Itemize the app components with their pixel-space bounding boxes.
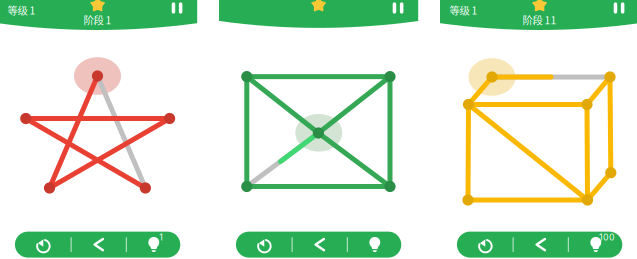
staticText: 阶段 11	[523, 12, 557, 27]
staticText: 等级 1	[450, 2, 478, 18]
button[interactable]: Back	[294, 232, 346, 258]
button[interactable]: Undo	[459, 232, 511, 258]
staticText: 100	[599, 232, 615, 243]
button[interactable]: Undo	[17, 232, 69, 258]
button[interactable]: Back	[515, 232, 567, 258]
button[interactable]: Pause	[165, 0, 191, 17]
button[interactable]: Pause	[607, 0, 633, 17]
button[interactable]: Pause	[386, 0, 412, 17]
staticText: 1	[159, 232, 163, 243]
button[interactable]: Hint	[570, 232, 622, 258]
button[interactable]: Hint	[349, 232, 401, 258]
button[interactable]: Hint	[128, 232, 180, 258]
staticText: 等级 1	[8, 2, 36, 18]
button[interactable]: Back	[73, 232, 125, 258]
button[interactable]: Undo	[238, 232, 290, 258]
staticText: 阶段 1	[84, 12, 112, 27]
